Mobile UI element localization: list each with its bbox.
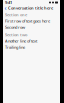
staticText: Section one — [5, 12, 27, 17]
staticText: Another line of text — [5, 38, 37, 43]
staticText: Second row — [5, 25, 25, 30]
staticText: 9:41 — [5, 0, 12, 5]
button[interactable]: Back — [4, 5, 7, 10]
staticText: Conversation title here — [8, 5, 53, 11]
staticText: Trailing line — [5, 45, 25, 50]
staticText: Section two — [5, 32, 27, 37]
staticText: First row of text goes here — [5, 18, 50, 24]
staticText: ‹ — [4, 4, 6, 12]
